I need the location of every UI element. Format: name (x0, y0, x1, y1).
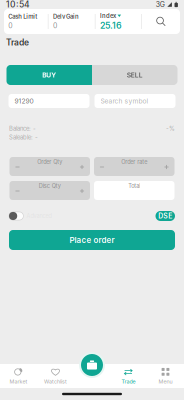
button[interactable]: BUY (6, 65, 92, 85)
button[interactable]: Decrease Order rate (94, 162, 110, 171)
staticText: -% (166, 125, 175, 132)
staticText: Disc Qty (39, 183, 61, 189)
button[interactable]: Portfolio (79, 352, 105, 378)
button[interactable]: SELL (92, 65, 177, 85)
button[interactable]: Trade (110, 365, 147, 387)
staticText: 0 (8, 22, 12, 30)
staticText: DSE (158, 212, 172, 220)
staticText: Menu (158, 378, 172, 385)
button[interactable]: Search (142, 9, 180, 34)
button[interactable]: Increase Order rate (158, 162, 174, 171)
button[interactable]: Menu (147, 365, 184, 387)
staticText: SELL (127, 71, 143, 79)
staticText: Order rate (121, 159, 147, 165)
staticText: Delv Gain (53, 13, 79, 20)
staticText: Total (128, 183, 140, 189)
staticText: 0 (53, 22, 57, 30)
button[interactable]: Place order (9, 230, 175, 250)
staticText: 10:54 (6, 0, 30, 10)
button[interactable]: Market (0, 365, 37, 387)
staticText: Trade (6, 37, 29, 48)
staticText: Place order (69, 235, 114, 245)
staticText: Cash Limit (8, 13, 37, 20)
staticText: Index (100, 12, 116, 19)
button[interactable]: Increase Order Qty (74, 162, 90, 171)
staticText: Saleable: - (9, 134, 38, 141)
staticText: 91290 (14, 97, 33, 105)
staticText: Market (9, 378, 27, 385)
button[interactable]: Decrease Disc Qty (9, 186, 25, 195)
button[interactable]: Increase Disc Qty (74, 186, 90, 195)
staticText: 3G (156, 0, 165, 9)
button[interactable]: Watchlist (37, 365, 74, 387)
button[interactable]: Search symbol (94, 94, 175, 108)
staticText: Watchlist (44, 378, 67, 385)
button[interactable]: DSE (155, 211, 175, 221)
button[interactable]: Total (94, 181, 174, 200)
staticText: 25.16 (100, 20, 122, 31)
staticText: Search symbol (100, 97, 148, 105)
button[interactable]: 91290 (8, 94, 89, 108)
staticText: Trade (121, 378, 135, 385)
staticText: BUY (42, 71, 56, 79)
button[interactable]: Decrease Order Qty (9, 162, 25, 171)
staticText: Order Qty (37, 159, 62, 165)
button[interactable]: Advanced (9, 211, 51, 221)
staticText: Balance: - (9, 125, 36, 132)
